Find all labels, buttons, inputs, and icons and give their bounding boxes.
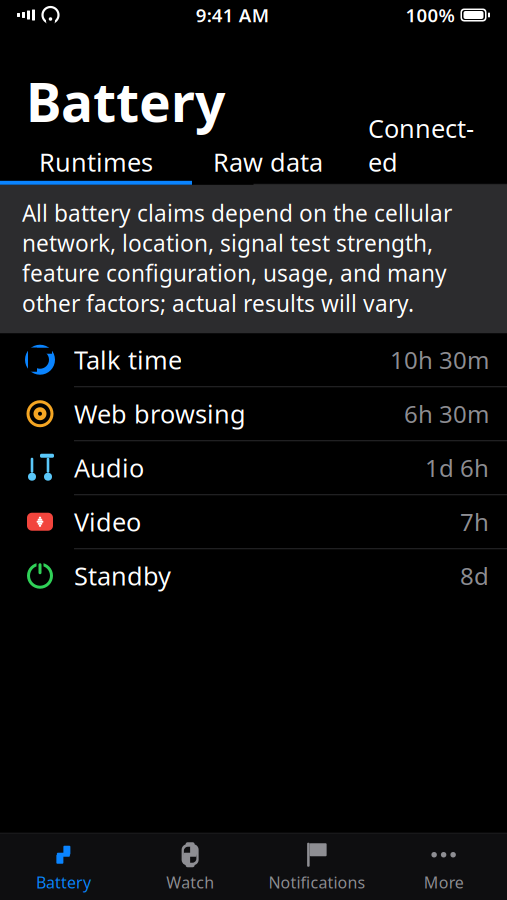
staticText: Raw data bbox=[213, 145, 323, 179]
staticText: Battery bbox=[36, 872, 91, 893]
button[interactable]: Talk time bbox=[0, 333, 507, 387]
staticText: Standby bbox=[74, 559, 171, 592]
staticText: 7h bbox=[460, 506, 489, 538]
staticText: 1d 6h bbox=[425, 452, 489, 484]
button[interactable]: Runtimes bbox=[0, 143, 192, 181]
staticText: Notifications bbox=[268, 872, 365, 893]
staticText: Watch bbox=[166, 872, 214, 893]
staticText: Video bbox=[74, 505, 141, 538]
staticText: Battery bbox=[26, 66, 225, 137]
staticText: 10h 30m bbox=[390, 344, 489, 376]
staticText: Audio bbox=[74, 451, 144, 484]
button[interactable]: Battery bbox=[0, 834, 127, 900]
staticText: Connected devices bbox=[368, 111, 474, 212]
button[interactable]: Video bbox=[0, 495, 507, 549]
staticText: More bbox=[424, 872, 464, 893]
button[interactable]: More bbox=[380, 834, 507, 900]
staticText: Web browsing bbox=[74, 397, 246, 430]
staticText: 100% bbox=[405, 3, 454, 27]
staticText: All battery claims depend on the cellula… bbox=[22, 198, 452, 318]
button[interactable]: Standby bbox=[0, 549, 507, 603]
button[interactable]: Web browsing bbox=[0, 387, 507, 441]
staticText: 6h 30m bbox=[404, 398, 489, 430]
staticText: 9:41 AM bbox=[196, 3, 269, 27]
staticText: 8d bbox=[460, 560, 489, 592]
button[interactable]: Notifications bbox=[253, 834, 380, 900]
button[interactable]: Connected devices bbox=[344, 143, 498, 181]
button[interactable]: Audio bbox=[0, 441, 507, 495]
staticText: Talk time bbox=[74, 343, 182, 376]
staticText: Runtimes bbox=[39, 145, 153, 179]
button[interactable]: Watch bbox=[127, 834, 254, 900]
button[interactable]: Raw data bbox=[192, 143, 344, 181]
